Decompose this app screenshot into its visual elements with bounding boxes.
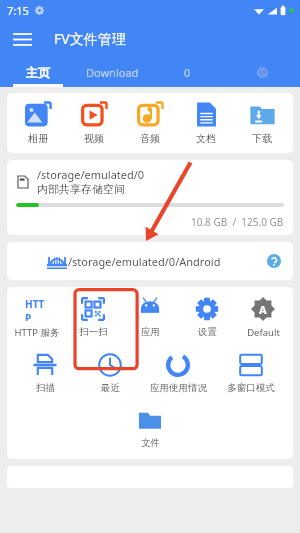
staticText: 文档 [196,132,216,145]
button[interactable]: /storage/emulated/0/Android [7,242,293,280]
staticText: 主页 [26,65,50,80]
button[interactable]: /storage/emulated/0 [7,160,293,235]
button[interactable]: 多窗口模式 [220,352,282,395]
button[interactable]: 音频 [125,100,175,146]
button[interactable]: 设置 [180,296,234,339]
staticText: 内部共享存储空间 [37,182,125,196]
staticText: HTTP [25,297,49,321]
staticText: /storage/emulated/0/Android [68,254,221,269]
button[interactable]: A [236,296,290,340]
button[interactable]: 相册 [13,100,63,146]
button[interactable]: Android apps tab [225,57,300,87]
staticText: 应用使用情况 [150,382,207,394]
button[interactable]: 文档 [181,100,231,146]
staticText: /storage/emulated/0 [37,167,145,182]
button[interactable]: 应用使用情况 [147,352,209,395]
button[interactable]: 最近 [83,352,137,395]
staticText: 最近 [101,382,120,394]
staticText: 7:15 [7,3,29,18]
button[interactable]: 扫描 [18,352,72,395]
button[interactable]: Download [75,57,150,87]
staticText: 文件 [141,437,160,449]
staticText: 扫描 [36,382,55,394]
staticText: 多窗口模式 [227,382,275,394]
staticText: Default [247,326,280,339]
staticText: HTTP 服务 [14,326,60,339]
staticText: 视频 [84,132,104,145]
staticText: Download [86,65,139,80]
staticText: 设置 [198,326,217,338]
staticText: 0 [184,65,191,80]
button[interactable]: 扫一扫 [66,296,120,339]
button[interactable]: Help [265,252,283,270]
staticText: 相册 [28,132,48,145]
staticText: A [259,302,267,317]
button[interactable]: HTTP [10,296,64,340]
staticText: 扫一扫 [79,326,108,338]
button[interactable]: 下载 [237,100,287,146]
staticText: FV文件管理 [54,29,126,48]
staticText: 10.8 GB / 125.0 GB [191,215,284,229]
button[interactable]: 文件 [123,407,177,450]
button[interactable]: 视频 [69,100,119,146]
staticText: 音频 [140,132,160,145]
button[interactable]: 主页 [0,57,75,87]
staticText: 下载 [252,132,272,145]
button[interactable]: Menu [7,24,37,54]
button[interactable]: 应用 [123,296,177,339]
button[interactable]: 0 [150,57,225,87]
staticText: 应用 [141,326,160,338]
